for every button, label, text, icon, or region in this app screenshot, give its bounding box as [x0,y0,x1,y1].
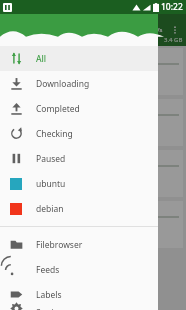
staticText: Peers: 6/13 [7,67,39,75]
staticText: Down: 7 B/s [7,75,41,83]
staticText: Down: 3.7 kB/s [7,126,49,134]
staticText: ubuntu [36,178,66,190]
button[interactable]: debian [0,196,158,221]
button[interactable]: archlinux-x86_64 [7,154,179,193]
button[interactable]: All [0,46,158,71]
staticText: fedora-workstation [7,205,66,214]
button[interactable]: Downloading [0,71,158,96]
staticText: Peers: 2/40 [7,220,39,228]
button[interactable]: Settings [0,307,158,310]
staticText: ubuntu-20.04-desktop [7,52,75,61]
staticText: debian [36,203,64,215]
staticText: Checking [36,128,73,140]
button[interactable]: Feeds [0,257,158,282]
staticText: Labels [36,289,62,301]
staticText: Paused [36,153,66,165]
staticText: debian-11-netinst [7,103,61,112]
staticText: 3.4 GB [164,36,183,44]
button[interactable]: debian-11-netinst [7,103,179,142]
staticText: Uploaded: 0 B [7,134,47,142]
staticText: Completed [36,103,80,115]
staticText: 10:22 [161,1,183,13]
button[interactable]: Completed [0,96,158,121]
staticText: Uploaded: 0 B [7,83,47,91]
staticText: Feeds [36,264,60,276]
button[interactable]: Checking [0,121,158,146]
staticText: Uploaded: 0 B [7,236,47,244]
staticText: Filebrowser [36,239,83,251]
button[interactable]: ubuntu-20.04-desktop [7,52,179,91]
button[interactable]: More options [168,23,182,37]
staticText: Settings [36,307,69,310]
staticText: Down: 0 B/s [7,177,41,185]
button[interactable]: Paused [0,146,158,171]
staticText: Downloading [36,78,90,90]
staticText: Uploaded: 0 B [7,185,47,193]
button[interactable]: ubuntu [0,171,158,196]
staticText: All [36,53,47,65]
staticText: 4.3 MB/s [138,26,163,34]
button[interactable]: Filebrowser [0,232,158,257]
button[interactable]: fedora-workstation [7,205,179,244]
button[interactable]: Labels [0,282,158,307]
staticText: archlinux-x86_64 [7,154,59,163]
